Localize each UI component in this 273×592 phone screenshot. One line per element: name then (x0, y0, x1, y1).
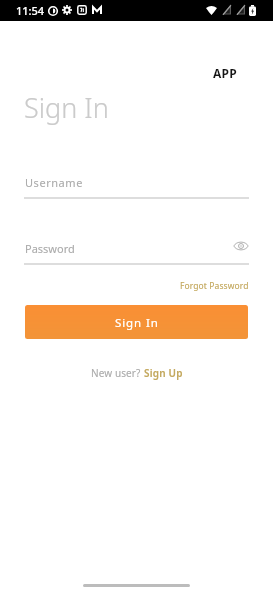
button[interactable]: Show password (229, 234, 253, 258)
staticText: Username (25, 175, 83, 190)
staticText: New user? (91, 366, 144, 380)
button[interactable]: Username (24, 170, 249, 199)
button[interactable]: Sign Up (144, 366, 183, 380)
staticText: Forgot Password (180, 280, 249, 292)
staticText: Sign In (115, 315, 159, 331)
staticText: Sign In (24, 89, 109, 126)
staticText: APP (213, 65, 237, 81)
button[interactable]: Password (24, 236, 249, 265)
staticText: Password (25, 241, 75, 256)
button[interactable]: Sign In (25, 305, 248, 339)
staticText: 11:54 (16, 3, 45, 18)
button[interactable]: Forgot Password (168, 276, 249, 296)
staticText: Sign Up (144, 366, 183, 380)
button[interactable]: APP (200, 62, 249, 84)
